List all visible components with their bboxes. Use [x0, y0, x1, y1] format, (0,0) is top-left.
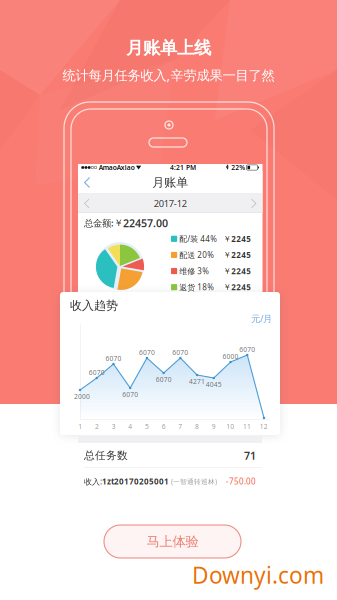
- staticText: 6070: [105, 354, 121, 363]
- staticText: 6070: [139, 348, 155, 357]
- staticText: 月账单上线: [126, 37, 211, 59]
- staticText: 4271: [189, 377, 205, 386]
- staticText: Downyi.com: [192, 560, 324, 590]
- staticText: 元/月: [251, 312, 272, 325]
- staticText: ￥: [223, 250, 231, 260]
- staticText: 6070: [122, 390, 138, 399]
- staticText: 11: [243, 422, 251, 431]
- staticText: 9: [212, 422, 216, 431]
- staticText: 22457.00: [123, 216, 168, 230]
- staticText: 6000: [222, 352, 238, 361]
- staticText: 1zt20170205001: [102, 476, 169, 487]
- staticText: 配/装 44%: [177, 233, 217, 244]
- staticText: 马上体验: [146, 533, 198, 550]
- staticText: 2245: [231, 233, 251, 244]
- staticText: 6070: [89, 368, 105, 377]
- staticText: 收入:: [84, 476, 102, 487]
- staticText: -750.00: [226, 476, 256, 487]
- staticText: 4045: [206, 380, 222, 389]
- staticText: 2245: [231, 266, 251, 276]
- staticText: ￥: [223, 282, 231, 292]
- staticText: 3: [112, 422, 116, 431]
- staticText: 6: [162, 422, 166, 431]
- staticText: 2: [95, 422, 99, 431]
- staticText: ￥: [223, 266, 231, 276]
- staticText: ￥: [114, 217, 123, 229]
- button[interactable]: 马上体验: [104, 525, 241, 558]
- staticText: 71: [244, 448, 256, 463]
- staticText: 22%: [231, 163, 245, 172]
- staticText: 2017-12: [154, 197, 187, 210]
- staticText: 返货 18%: [177, 282, 214, 292]
- staticText: 2245: [231, 282, 251, 292]
- staticText: 2000: [74, 392, 90, 401]
- staticText: 6070: [156, 375, 172, 384]
- staticText: 配送 20%: [177, 250, 214, 260]
- staticText: 月账单: [152, 175, 188, 190]
- staticText: 收入趋势: [70, 298, 118, 313]
- staticText: 总任务数: [84, 449, 128, 462]
- staticText: 维修 3%: [177, 266, 209, 276]
- staticText: 6070: [239, 345, 255, 354]
- staticText: 总金额:: [84, 217, 114, 229]
- staticText: 4:21 PM: [170, 163, 196, 172]
- staticText: ￥: [223, 234, 231, 244]
- staticText: 统计每月任务收入,辛劳成果一目了然: [62, 66, 274, 84]
- staticText: 5: [145, 422, 149, 431]
- staticText: 4: [128, 422, 132, 431]
- staticText: (一智通转巡林): [169, 477, 217, 486]
- staticText: 1: [78, 422, 82, 431]
- staticText: 7: [178, 422, 182, 431]
- staticText: AmaoAxiao: [97, 163, 135, 172]
- staticText: 6070: [172, 348, 188, 357]
- staticText: 12: [260, 422, 268, 431]
- staticText: 2245: [231, 250, 251, 260]
- staticText: 10: [226, 422, 234, 431]
- staticText: 8: [195, 422, 199, 431]
